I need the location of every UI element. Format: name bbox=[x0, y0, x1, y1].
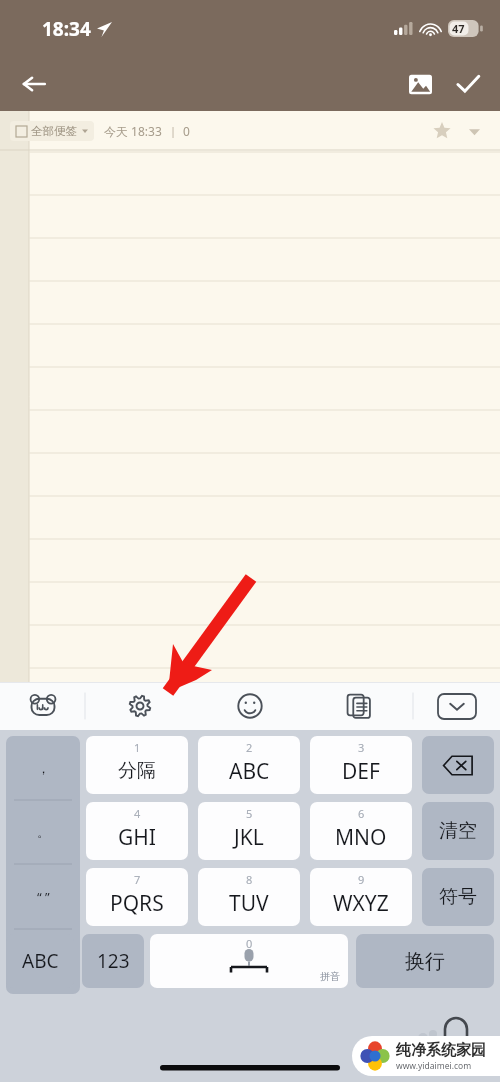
staticText: 拼音 bbox=[320, 970, 340, 983]
staticText: WXYZ bbox=[333, 889, 389, 918]
button[interactable]: ABC bbox=[6, 934, 74, 988]
staticText: | bbox=[170, 123, 177, 138]
button[interactable]: 7 bbox=[86, 868, 188, 926]
staticText: 0 bbox=[246, 936, 253, 951]
staticText: 123 bbox=[97, 948, 130, 974]
staticText: 今天 18:33 bbox=[104, 123, 162, 139]
staticText: — bbox=[35, 952, 51, 972]
staticText: PQRS bbox=[110, 889, 164, 918]
button[interactable]: 8 bbox=[198, 868, 300, 926]
button[interactable]: More bbox=[458, 115, 490, 147]
staticText: “ ” bbox=[37, 888, 50, 906]
staticText: 18:34 bbox=[42, 16, 91, 42]
button[interactable]: 换行 bbox=[356, 934, 494, 988]
button[interactable]: Baidu input bbox=[0, 682, 85, 730]
button[interactable]: Settings bbox=[85, 682, 195, 730]
staticText: 47 bbox=[452, 21, 465, 36]
staticText: 1 bbox=[134, 740, 141, 755]
staticText: 0 bbox=[183, 123, 190, 139]
staticText: 4 bbox=[134, 806, 141, 821]
button[interactable]: 1 bbox=[86, 736, 188, 794]
button[interactable]: 3 bbox=[310, 736, 412, 794]
button[interactable]: 123 bbox=[82, 934, 144, 988]
staticText: DEF bbox=[342, 757, 380, 786]
staticText: 2 bbox=[246, 740, 253, 755]
button[interactable]: Insert image bbox=[396, 60, 444, 108]
button[interactable]: Space, voice input bbox=[150, 934, 348, 988]
button[interactable]: 4 bbox=[86, 802, 188, 860]
staticText: 分隔 bbox=[118, 759, 156, 783]
staticText: 符号 bbox=[439, 885, 477, 909]
button[interactable]: 5 bbox=[198, 802, 300, 860]
button[interactable]: Backspace bbox=[422, 736, 494, 794]
staticText: 6 bbox=[358, 806, 365, 821]
staticText: www.yidaimei.com bbox=[396, 1060, 472, 1072]
button[interactable]: Favorite bbox=[426, 115, 458, 147]
button[interactable]: Done bbox=[444, 60, 492, 108]
staticText: ABC bbox=[229, 757, 270, 786]
button[interactable]: — bbox=[6, 929, 80, 994]
button[interactable]: “ ” bbox=[6, 864, 80, 929]
button[interactable]: 9 bbox=[310, 868, 412, 926]
button[interactable]: Back bbox=[8, 58, 60, 110]
button[interactable]: 6 bbox=[310, 802, 412, 860]
staticText: TUV bbox=[229, 889, 269, 918]
staticText: 7 bbox=[134, 872, 141, 887]
button[interactable]: ， bbox=[6, 736, 80, 800]
button[interactable]: 全部便签 bbox=[16, 124, 88, 138]
button[interactable]: 符号 bbox=[422, 868, 494, 926]
staticText: 8 bbox=[246, 872, 253, 887]
staticText: ， bbox=[37, 760, 50, 776]
button[interactable]: Clipboard bbox=[304, 682, 413, 730]
button[interactable]: Hide keyboard bbox=[413, 682, 500, 730]
staticText: 清空 bbox=[439, 819, 477, 843]
staticText: 。 bbox=[37, 824, 50, 840]
button[interactable]: 清空 bbox=[422, 802, 494, 860]
staticText: 全部便签 bbox=[31, 124, 77, 138]
staticText: 5 bbox=[246, 806, 253, 821]
staticText: GHI bbox=[118, 823, 156, 852]
staticText: 9 bbox=[358, 872, 365, 887]
staticText: 3 bbox=[358, 740, 365, 755]
staticText: MNO bbox=[335, 823, 387, 852]
button[interactable]: 2 bbox=[198, 736, 300, 794]
button[interactable]: Emoji bbox=[195, 682, 304, 730]
staticText: 纯净系统家园 bbox=[396, 1041, 486, 1060]
staticText: 换行 bbox=[405, 949, 445, 974]
staticText: ABC bbox=[22, 948, 59, 974]
staticText: JKL bbox=[234, 823, 264, 852]
